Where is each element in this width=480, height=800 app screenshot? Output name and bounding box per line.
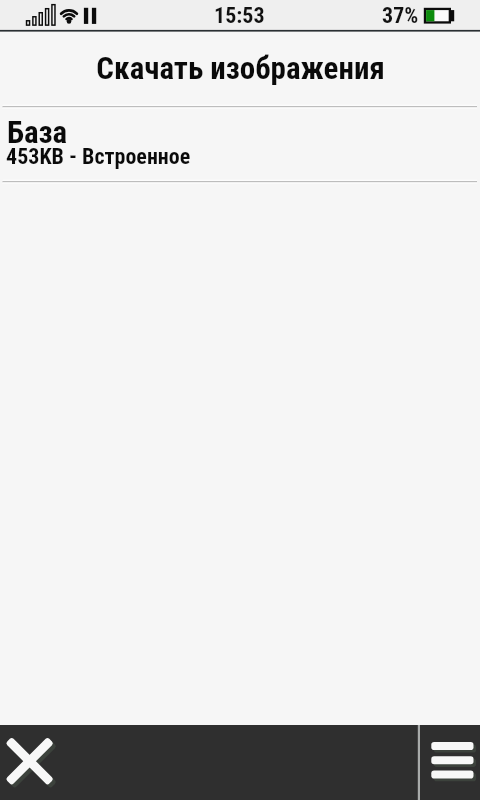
staticText: 453KB - Встроенное [6, 144, 191, 170]
button[interactable]: База [0, 106, 480, 182]
staticText: Скачать изображения [96, 50, 385, 86]
staticText: 37% [382, 3, 419, 29]
staticText: 15:53 [214, 3, 265, 29]
staticText: База [7, 114, 68, 150]
button[interactable]: Close [0, 725, 60, 800]
button[interactable]: Menu [419, 725, 480, 800]
